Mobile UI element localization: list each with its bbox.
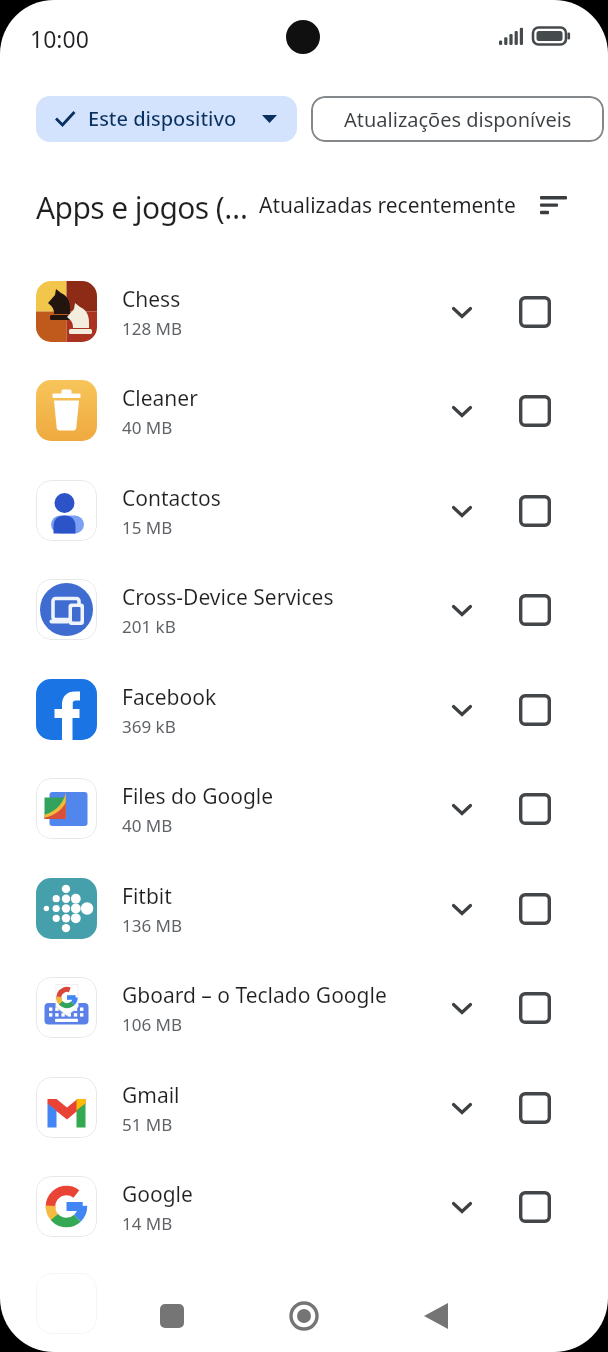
button[interactable] (148, 1292, 196, 1340)
button[interactable]: Facebook (0, 660, 608, 759)
staticText: 40 MB (122, 814, 173, 837)
button[interactable] (513, 588, 557, 632)
staticText: Gboard – o Teclado Google (122, 981, 387, 1010)
staticText: Cross-Device Services (122, 583, 334, 612)
staticText: Google (122, 1180, 193, 1209)
button[interactable] (513, 489, 557, 533)
button[interactable] (440, 489, 484, 533)
staticText: 14 MB (122, 1212, 173, 1235)
staticText: 10:00 (30, 23, 89, 54)
button[interactable]: Atualizadas recentemente (255, 184, 570, 226)
staticText: 15 MB (122, 516, 173, 539)
staticText: 51 MB (122, 1113, 173, 1136)
button[interactable] (440, 588, 484, 632)
button[interactable] (513, 986, 557, 1030)
button[interactable] (513, 290, 557, 334)
button[interactable] (440, 1086, 484, 1130)
staticText: Cleaner (122, 384, 198, 413)
staticText: Facebook (122, 683, 217, 712)
staticText: 106 MB (122, 1013, 183, 1036)
button[interactable] (440, 290, 484, 334)
staticText: Apps e jogos (… (36, 187, 248, 228)
button[interactable] (513, 688, 557, 732)
staticText: Files do Google (122, 782, 274, 811)
button[interactable]: Gboard – o Teclado Google (0, 958, 608, 1057)
staticText: Atualizadas recentemente (259, 191, 516, 220)
button[interactable]: Contactos (0, 461, 608, 560)
button[interactable] (440, 887, 484, 931)
button[interactable] (440, 787, 484, 831)
button[interactable]: Cleaner (0, 361, 608, 460)
button[interactable] (513, 1086, 557, 1130)
button[interactable] (513, 887, 557, 931)
staticText: Este dispositivo (88, 105, 237, 132)
staticText: Gmail (122, 1081, 180, 1110)
button[interactable] (440, 1185, 484, 1229)
button[interactable]: Google (0, 1157, 608, 1256)
button[interactable]: Files do Google (0, 759, 608, 858)
staticText: Atualizações disponíveis (344, 106, 572, 133)
button[interactable]: Fitbit (0, 859, 608, 958)
staticText: 369 kB (122, 715, 176, 738)
staticText: 136 MB (122, 914, 183, 937)
button[interactable] (513, 389, 557, 433)
button[interactable]: Este dispositivo (36, 96, 297, 142)
staticText: Fitbit (122, 882, 172, 911)
button[interactable] (513, 787, 557, 831)
button[interactable] (280, 1292, 328, 1340)
button[interactable]: Cross-Device Services (0, 560, 608, 659)
button[interactable] (440, 389, 484, 433)
button[interactable] (440, 986, 484, 1030)
button[interactable]: Chess (0, 262, 608, 361)
button[interactable] (412, 1292, 460, 1340)
staticText: 40 MB (122, 416, 173, 439)
button[interactable] (440, 688, 484, 732)
button[interactable]: Atualizações disponíveis (311, 96, 604, 142)
staticText: Contactos (122, 484, 221, 513)
staticText: 201 kB (122, 615, 176, 638)
staticText: 128 MB (122, 317, 183, 340)
button[interactable] (513, 1185, 557, 1229)
button[interactable]: Gmail (0, 1058, 608, 1157)
staticText: Chess (122, 285, 181, 314)
